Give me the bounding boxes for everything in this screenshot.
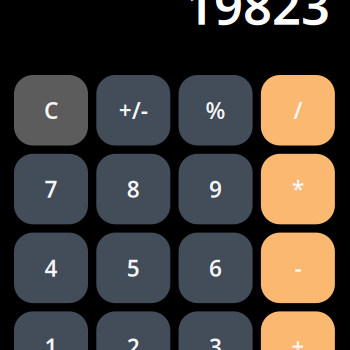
staticText: 19823	[185, 0, 330, 39]
button[interactable]: Clear	[14, 75, 88, 145]
staticText: 7	[44, 174, 57, 204]
button[interactable]: Plus minus	[96, 75, 170, 145]
staticText: 8	[127, 174, 140, 204]
button[interactable]: 6	[179, 233, 253, 303]
button[interactable]: 8	[96, 154, 170, 224]
staticText: 1	[44, 332, 57, 350]
staticText: 5	[127, 253, 140, 283]
staticText: *	[292, 174, 304, 204]
staticText: +/-	[119, 95, 148, 125]
button[interactable]: Percent	[179, 75, 253, 145]
button[interactable]: 3	[179, 311, 253, 350]
staticText: -	[294, 253, 301, 283]
button[interactable]: Divide	[261, 75, 335, 145]
staticText: +	[291, 332, 304, 350]
staticText: 4	[44, 253, 57, 283]
button[interactable]: 4	[14, 233, 88, 303]
button[interactable]: 7	[14, 154, 88, 224]
button[interactable]: 1	[14, 311, 88, 350]
button[interactable]: Minus	[261, 233, 335, 303]
button[interactable]: Multiply	[261, 154, 335, 224]
staticText: 6	[209, 253, 222, 283]
button[interactable]: 5	[96, 233, 170, 303]
staticText: /	[293, 95, 302, 125]
staticText: %	[206, 95, 226, 125]
staticText: 3	[209, 332, 222, 350]
staticText: 2	[127, 332, 140, 350]
button[interactable]: Plus	[261, 311, 335, 350]
staticText: 9	[209, 174, 222, 204]
button[interactable]: 9	[179, 154, 253, 224]
button[interactable]: 2	[96, 311, 170, 350]
staticText: C	[44, 95, 58, 125]
